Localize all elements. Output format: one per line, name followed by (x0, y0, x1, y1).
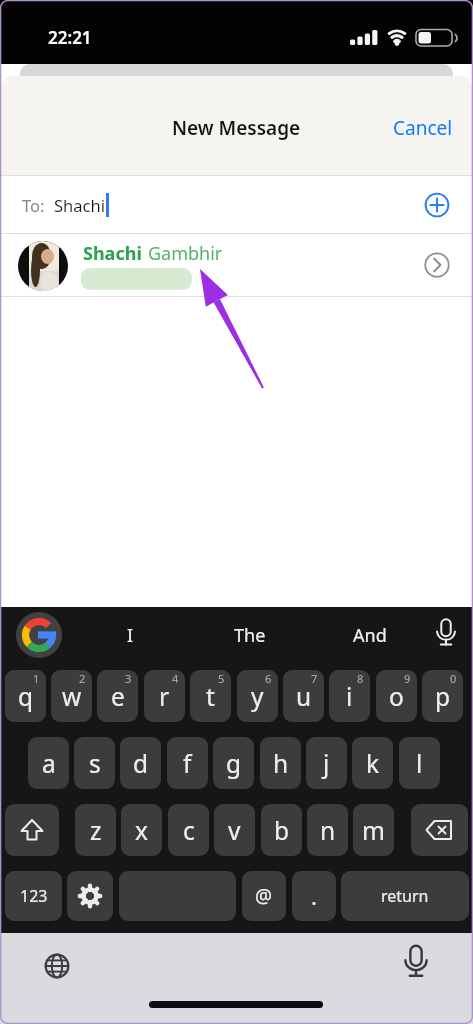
button[interactable]: l (399, 737, 440, 789)
button[interactable] (40, 949, 74, 983)
button[interactable]: q (5, 670, 46, 722)
button[interactable]: @ (242, 871, 286, 921)
staticText: 2 (79, 671, 86, 686)
staticText: m (362, 814, 385, 847)
staticText: f (183, 747, 192, 780)
staticText: And (353, 623, 387, 648)
staticText: 7 (311, 671, 318, 686)
staticText: 123 (20, 885, 48, 907)
staticText: The (234, 623, 266, 648)
staticText: v (228, 814, 241, 847)
button[interactable]: I (95, 620, 165, 650)
button[interactable]: r (144, 670, 185, 722)
button[interactable]: . (292, 871, 336, 921)
staticText: g (226, 747, 242, 780)
button[interactable]: o (376, 670, 417, 722)
staticText: d (133, 747, 149, 780)
staticText: r (159, 680, 170, 713)
button[interactable]: i (329, 670, 370, 722)
staticText: return (381, 885, 429, 907)
button[interactable]: h (260, 737, 301, 789)
staticText: Gambhir (148, 241, 223, 265)
button[interactable]: x (121, 804, 162, 856)
staticText: q (18, 680, 34, 713)
staticText: o (389, 680, 404, 713)
button[interactable]: n (307, 804, 348, 856)
staticText: u (296, 680, 312, 713)
button[interactable]: p (422, 670, 463, 722)
staticText: @ (255, 883, 273, 909)
staticText: a (42, 747, 56, 780)
staticText: p (435, 680, 451, 713)
staticText: n (320, 814, 336, 847)
button[interactable]: j (306, 737, 347, 789)
staticText: Shachi (54, 194, 105, 216)
button[interactable]: Cancel (373, 110, 453, 146)
staticText: k (366, 747, 380, 780)
button[interactable]: d (120, 737, 161, 789)
button[interactable]: k (352, 737, 393, 789)
button[interactable]: The (215, 620, 285, 650)
staticText: 22:21 (48, 26, 92, 49)
staticText: c (183, 814, 195, 847)
button[interactable]: And (335, 620, 405, 650)
button[interactable]: t (190, 670, 231, 722)
button[interactable]: s (74, 737, 115, 789)
button[interactable]: u (283, 670, 324, 722)
staticText: 4 (172, 671, 179, 686)
button[interactable]: return (341, 871, 469, 921)
staticText: New Message (172, 115, 301, 141)
button[interactable]: 123 (5, 871, 62, 921)
staticText: e (111, 680, 125, 713)
staticText: i (346, 680, 353, 713)
staticText: 5 (218, 671, 225, 686)
button[interactable]: f (167, 737, 208, 789)
button[interactable] (424, 252, 450, 278)
staticText: t (206, 680, 215, 713)
staticText: . (311, 881, 317, 911)
button[interactable]: e (97, 670, 138, 722)
button[interactable]: g (213, 737, 254, 789)
staticText: Shachi (83, 241, 142, 265)
button[interactable] (1, 234, 472, 296)
button[interactable] (119, 871, 236, 921)
button[interactable]: w (51, 670, 92, 722)
button[interactable] (67, 871, 113, 921)
button[interactable]: m (353, 804, 394, 856)
button[interactable]: To: (1, 175, 472, 234)
button[interactable] (432, 620, 460, 650)
staticText: b (274, 814, 290, 847)
staticText: I (127, 623, 134, 648)
staticText: l (416, 747, 423, 780)
button[interactable] (411, 804, 468, 856)
button[interactable]: a (28, 737, 69, 789)
button[interactable] (399, 947, 433, 983)
staticText: y (251, 680, 264, 713)
staticText: To: (22, 194, 45, 216)
button[interactable]: v (214, 804, 255, 856)
button[interactable] (424, 192, 450, 218)
staticText: 8 (357, 671, 364, 686)
button[interactable] (5, 804, 59, 856)
staticText: 9 (404, 671, 411, 686)
staticText: j (323, 747, 330, 780)
staticText: 1 (33, 671, 40, 686)
staticText: x (135, 814, 148, 847)
staticText: 3 (125, 671, 132, 686)
staticText: h (273, 747, 289, 780)
staticText: s (89, 747, 101, 780)
button[interactable] (16, 612, 62, 658)
staticText: Cancel (393, 115, 453, 141)
button[interactable]: b (261, 804, 302, 856)
staticText: 0 (450, 671, 457, 686)
button[interactable]: z (75, 804, 116, 856)
staticText: w (62, 680, 82, 713)
button[interactable]: c (168, 804, 209, 856)
staticText: 6 (265, 671, 272, 686)
staticText: z (90, 814, 102, 847)
button[interactable]: y (237, 670, 278, 722)
